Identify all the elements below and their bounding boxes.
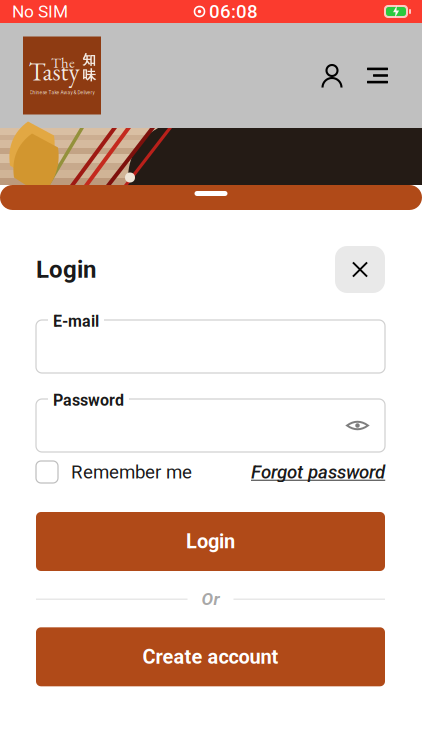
staticText: The	[51, 53, 75, 72]
button[interactable]: Close	[335, 246, 385, 293]
button[interactable]: Forgot password	[251, 461, 385, 483]
staticText: 知	[82, 52, 95, 68]
staticText: Chinese Take Away & Delivery	[29, 90, 94, 95]
staticText: Remember me	[71, 461, 192, 483]
button[interactable]: Account	[315, 54, 355, 96]
staticText: 味	[82, 67, 95, 83]
button[interactable]: Menu	[355, 56, 400, 94]
staticText: Create account	[142, 645, 278, 668]
staticText: No SIM	[12, 1, 68, 22]
button[interactable]: Create account	[36, 627, 385, 686]
staticText: 06:08	[209, 1, 258, 22]
staticText: Or	[201, 589, 219, 609]
staticText: Tasty	[28, 55, 79, 88]
staticText: Password	[53, 391, 124, 410]
staticText: E-mail	[53, 312, 99, 331]
staticText: Login	[186, 530, 235, 553]
staticText: Forgot password	[251, 461, 385, 483]
staticText: Login	[36, 255, 96, 283]
button[interactable]: Login	[36, 512, 385, 571]
button[interactable]: Remember me	[36, 461, 192, 483]
